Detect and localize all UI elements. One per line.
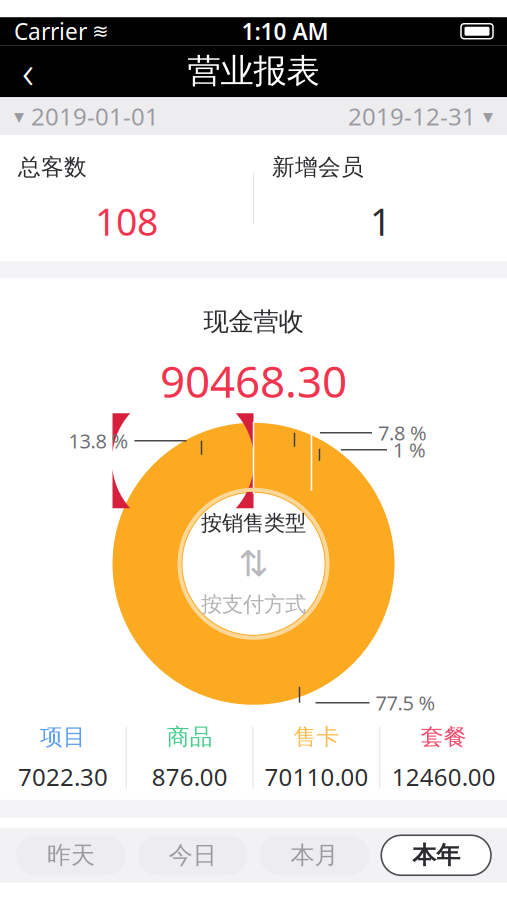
staticText: 70110.00	[264, 761, 368, 793]
button[interactable]: 本年	[381, 835, 491, 875]
staticText: 今日	[169, 840, 217, 870]
button[interactable]: ▾	[0, 97, 173, 135]
staticText: 新增会员	[272, 153, 364, 181]
staticText: ▾	[483, 105, 493, 128]
staticText: ⇅	[238, 543, 268, 584]
staticText: 按支付方式	[201, 591, 306, 617]
staticText: 876.00	[152, 761, 228, 793]
staticText: ▾	[14, 105, 24, 128]
staticText: 13.8 %	[68, 427, 128, 454]
staticText: 2019-01-01	[31, 100, 159, 132]
button[interactable]: 昨天	[16, 835, 126, 875]
staticText: 7.8 %	[378, 419, 427, 446]
staticText: 90468.30	[160, 351, 347, 410]
staticText: 1 %	[393, 436, 426, 463]
staticText: ‹	[22, 41, 34, 101]
staticText: ≋	[92, 20, 109, 43]
staticText: 总客数	[18, 153, 87, 181]
staticText: 商品	[167, 723, 213, 751]
button[interactable]: 今日	[138, 835, 248, 875]
button[interactable]: Back	[0, 45, 56, 97]
staticText: 本年	[412, 840, 460, 870]
staticText: 1:10 AM	[241, 16, 328, 46]
staticText: 按销售类型	[201, 510, 306, 536]
staticText: 套餐	[421, 723, 467, 751]
button[interactable]: 2019-12-31	[334, 97, 507, 135]
button[interactable]: 本月	[259, 835, 369, 875]
staticText: 项目	[40, 723, 86, 751]
staticText: 2019-12-31	[348, 100, 476, 132]
staticText: 12460.00	[392, 761, 496, 793]
staticText: 本月	[290, 840, 338, 870]
staticText: 108	[95, 196, 158, 246]
staticText: 昨天	[47, 840, 95, 870]
staticText: Carrier	[14, 16, 87, 46]
staticText: 营业报表	[187, 51, 319, 92]
staticText: 1	[370, 196, 391, 246]
staticText: 7022.30	[18, 761, 108, 793]
staticText: 现金营收	[203, 306, 303, 337]
staticText: 77.5 %	[375, 689, 435, 716]
staticText: 售卡	[293, 723, 339, 751]
